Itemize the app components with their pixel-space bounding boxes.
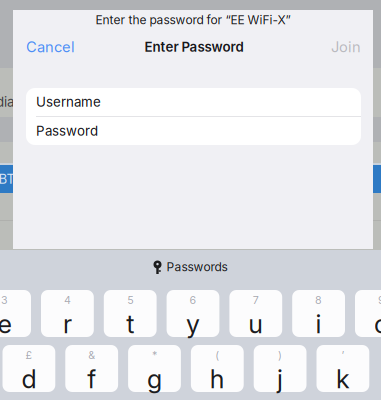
staticText: Passwords (166, 260, 227, 274)
staticText: 8 (315, 294, 322, 307)
staticText: 4 (64, 294, 71, 307)
staticText: Join (331, 38, 361, 56)
button[interactable]: Username (26, 88, 361, 116)
staticText: y (186, 309, 200, 339)
staticText: o (374, 309, 381, 339)
staticText: h (210, 364, 225, 394)
button[interactable]: ’ (316, 345, 369, 392)
staticText: 3 (1, 294, 8, 307)
button[interactable]: 7 (229, 290, 282, 337)
staticText: Username (36, 94, 101, 110)
staticText: t (126, 309, 134, 339)
staticText: Cancel (26, 38, 75, 56)
staticText: 7 (253, 294, 259, 307)
button[interactable]: Passwords (153, 253, 227, 281)
staticText: Enter the password for “EE WiFi-X” (95, 13, 290, 27)
button[interactable]: 5 (104, 290, 157, 337)
staticText: dia (0, 94, 14, 110)
staticText: 6 (189, 294, 196, 307)
button[interactable]: 3 (0, 290, 31, 337)
staticText: u (248, 309, 263, 339)
staticText: i (316, 309, 322, 339)
button[interactable]: ( (191, 345, 244, 392)
button[interactable]: Password (26, 117, 361, 145)
staticText: j (277, 364, 283, 394)
button[interactable]: 4 (41, 290, 94, 337)
button[interactable]: Join (321, 35, 361, 59)
staticText: 5 (127, 294, 133, 307)
staticText: BT (0, 171, 15, 187)
staticText: ’ (341, 349, 344, 362)
staticText: * (152, 349, 157, 362)
button[interactable]: £ (2, 345, 55, 392)
staticText: k (336, 364, 350, 394)
staticText: ( (215, 349, 219, 362)
button[interactable]: 9 (355, 290, 381, 337)
button[interactable]: 6 (167, 290, 219, 337)
staticText: ) (278, 349, 282, 362)
staticText: 9 (378, 294, 381, 307)
staticText: e (0, 309, 12, 339)
staticText: d (21, 364, 36, 394)
staticText: f (87, 364, 96, 394)
staticText: Password (36, 123, 98, 139)
button[interactable]: Cancel (26, 35, 86, 59)
button[interactable]: * (128, 345, 181, 392)
staticText: Enter Password (144, 39, 243, 55)
button[interactable]: 8 (292, 290, 345, 337)
staticText: £ (25, 349, 32, 362)
button[interactable]: ) (254, 345, 306, 392)
staticText: g (147, 364, 162, 394)
staticText: r (63, 309, 72, 339)
button[interactable]: & (65, 345, 118, 392)
staticText: & (88, 349, 95, 362)
